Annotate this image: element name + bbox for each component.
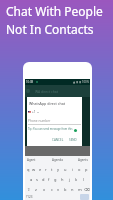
staticText: b (64, 187, 67, 192)
staticText: Phone number (28, 119, 51, 123)
staticText: q (27, 167, 30, 172)
staticText: ⌫ (84, 187, 90, 192)
staticText: a (30, 177, 33, 182)
staticText: Not In Contacts (6, 21, 94, 37)
staticText: t (51, 167, 53, 172)
staticText: x (43, 187, 46, 192)
staticText: p (85, 167, 88, 172)
staticText: Tip: You can send message from this app. (28, 127, 75, 131)
staticText: ⇧ (27, 187, 31, 192)
staticText: Agents (78, 158, 88, 162)
staticText: SEND (69, 138, 77, 142)
button[interactable]: SEND (68, 137, 78, 143)
staticText: h (61, 177, 64, 182)
staticText: 10:08 (26, 80, 34, 84)
staticText: c (51, 187, 53, 192)
staticText: e (39, 167, 42, 172)
staticText: Agenda (52, 158, 63, 162)
staticText: ▲ ▮ ▮ 100% (73, 80, 89, 84)
staticText: w (32, 167, 36, 172)
staticText: j (69, 177, 71, 182)
staticText: g (54, 177, 57, 182)
staticText: k (75, 177, 78, 182)
staticText: Agent (27, 158, 36, 162)
staticText: CANCEL (52, 138, 64, 142)
button[interactable]: CANCEL (51, 137, 65, 143)
staticText: WhatsApp direct chat (29, 101, 66, 106)
staticText: l (83, 177, 85, 182)
staticText: ?123 (26, 195, 33, 199)
staticText: d (42, 177, 45, 182)
staticText: s (36, 177, 38, 182)
staticText: z (35, 187, 37, 192)
button[interactable]: +1 (28, 110, 39, 114)
staticText: f (48, 177, 50, 182)
staticText: n (71, 187, 74, 192)
button[interactable]: Menu (26, 89, 30, 93)
staticText: v (57, 187, 60, 192)
staticText: r (45, 167, 47, 172)
staticText: o (78, 167, 81, 172)
staticText: y (57, 167, 60, 172)
staticText: m (78, 187, 82, 192)
staticText: WA direct chat (35, 89, 58, 94)
staticText: Chat With People (6, 3, 103, 19)
staticText: +1 (32, 110, 36, 114)
staticText: u (64, 167, 67, 172)
staticText: i (72, 167, 74, 172)
